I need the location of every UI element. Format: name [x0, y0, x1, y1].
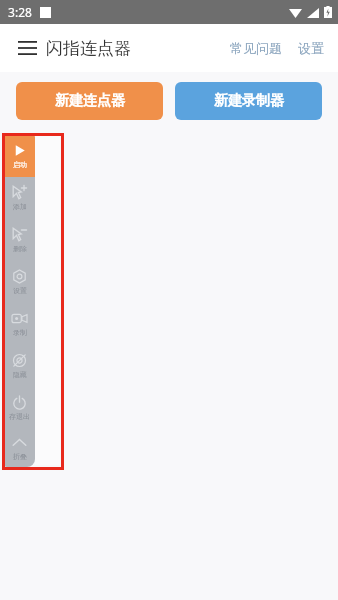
- button[interactable]: 添加: [4, 177, 35, 219]
- button[interactable]: 设置: [294, 34, 328, 62]
- button[interactable]: Menu: [10, 31, 44, 65]
- staticText: 存退出: [9, 412, 30, 421]
- button[interactable]: 新建连点器: [16, 82, 163, 120]
- staticText: 常见问题: [230, 40, 282, 56]
- staticText: 新建录制器: [214, 92, 284, 110]
- button[interactable]: 存退出: [4, 387, 35, 429]
- button[interactable]: 常见问题: [226, 34, 286, 62]
- staticText: 折叠: [13, 452, 27, 461]
- staticText: 隐藏: [13, 370, 27, 379]
- staticText: 设置: [298, 40, 324, 56]
- staticText: 新建连点器: [55, 92, 125, 110]
- button[interactable]: 隐藏: [4, 345, 35, 387]
- button[interactable]: 新建录制器: [175, 82, 322, 120]
- staticText: 启动: [13, 160, 27, 169]
- button[interactable]: 启动: [4, 135, 35, 177]
- staticText: 闪指连点器: [46, 38, 131, 59]
- button[interactable]: 录制: [4, 303, 35, 345]
- staticText: 设置: [13, 286, 27, 295]
- staticText: 录制: [13, 328, 27, 337]
- staticText: 删除: [13, 244, 27, 253]
- button[interactable]: 折叠: [4, 429, 35, 467]
- button[interactable]: 删除: [4, 219, 35, 261]
- staticText: 添加: [13, 202, 27, 211]
- button[interactable]: 设置: [4, 261, 35, 303]
- staticText: 3:28: [8, 4, 32, 20]
